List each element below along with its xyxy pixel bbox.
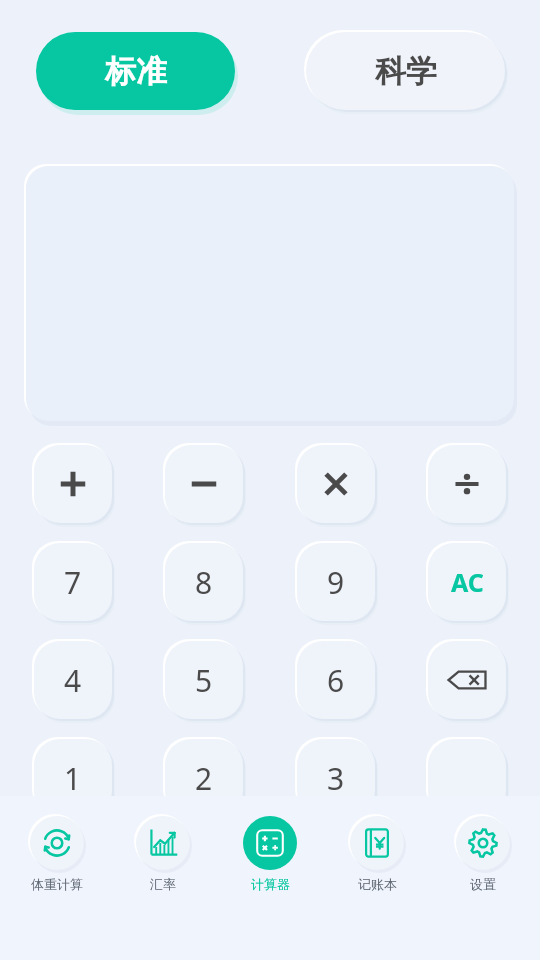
button[interactable]: 计算器 [220, 814, 320, 892]
staticText: 5 [195, 660, 213, 701]
staticText: 设置 [470, 876, 496, 892]
button[interactable]: 记账本 [327, 814, 427, 892]
staticText: 8 [195, 562, 213, 603]
staticText: 7 [64, 562, 82, 603]
staticText: 记账本 [358, 876, 397, 892]
button[interactable]: 设置 [433, 814, 533, 892]
staticText: 2 [195, 758, 213, 799]
staticText: 1 [64, 758, 82, 799]
button[interactable]: 科学 [306, 32, 505, 110]
staticText: 汇率 [150, 876, 176, 892]
staticText: 体重计算 [31, 876, 83, 892]
staticText: 9 [327, 562, 345, 603]
staticText: 6 [327, 660, 345, 701]
button[interactable]: 3 [297, 739, 375, 817]
staticText: 科学 [375, 52, 437, 91]
staticText: 标准 [105, 52, 167, 91]
button[interactable]: Multiply [297, 445, 375, 523]
button[interactable]: 9 [297, 543, 375, 621]
button[interactable]: AC [428, 543, 506, 621]
button[interactable]: 4 [34, 641, 112, 719]
button[interactable]: 体重计算 [7, 814, 107, 892]
staticText: 3 [327, 758, 345, 799]
staticText: 4 [64, 660, 82, 701]
staticText: 计算器 [251, 876, 290, 892]
button[interactable]: 汇率 [113, 814, 213, 892]
button[interactable]: Divide [428, 445, 506, 523]
button[interactable]: 1 [34, 739, 112, 817]
button[interactable]: Plus [34, 445, 112, 523]
button[interactable]: 标准 [36, 32, 235, 110]
button[interactable]: 2 [165, 739, 243, 817]
button[interactable]: Backspace [428, 641, 506, 719]
staticText: AC [451, 565, 484, 599]
button[interactable]: 7 [34, 543, 112, 621]
button[interactable]: 6 [297, 641, 375, 719]
button[interactable]: Minus [165, 445, 243, 523]
button[interactable]: 5 [165, 641, 243, 719]
button[interactable]: 8 [165, 543, 243, 621]
